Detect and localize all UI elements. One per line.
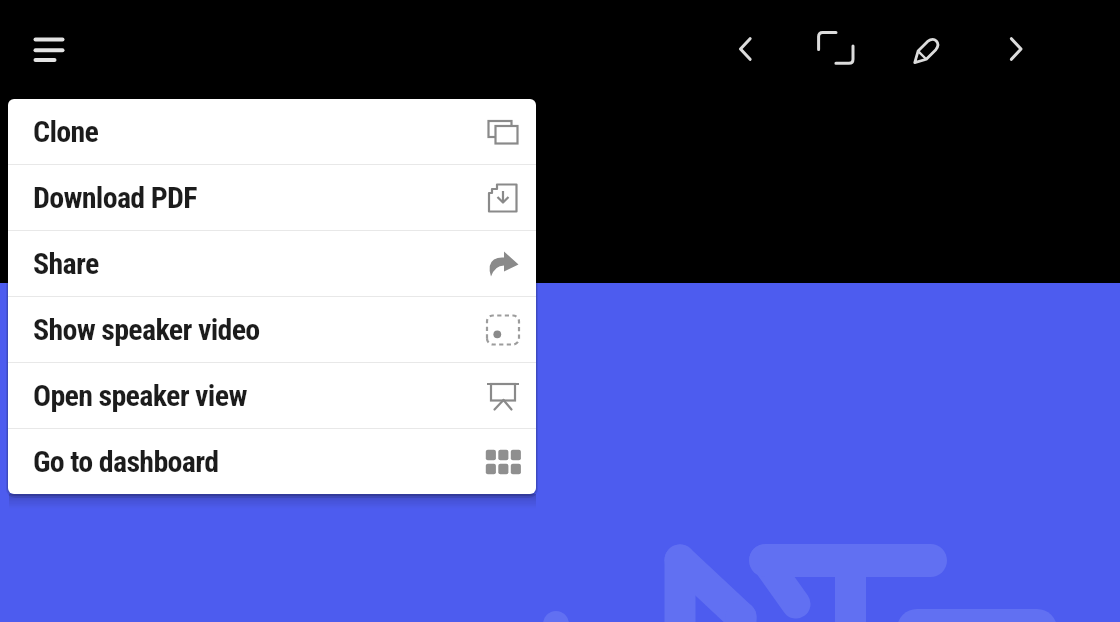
button[interactable] (906, 25, 952, 71)
button[interactable] (25, 26, 73, 74)
button[interactable]: Go to dashboard (8, 429, 536, 494)
button[interactable] (993, 25, 1039, 71)
button[interactable] (719, 25, 765, 71)
button[interactable]: Open speaker view (8, 363, 536, 428)
staticText: Open speaker view (33, 378, 247, 413)
button[interactable]: Share (8, 231, 536, 296)
button[interactable]: Show speaker video (8, 297, 536, 362)
button[interactable]: Clone (8, 99, 536, 164)
button[interactable]: Download PDF (8, 165, 536, 230)
button[interactable] (813, 25, 859, 71)
staticText: Share (33, 246, 99, 281)
staticText: Clone (33, 114, 99, 149)
staticText: Go to dashboard (33, 444, 219, 479)
staticText: Download PDF (33, 180, 197, 215)
staticText: Show speaker video (33, 312, 260, 347)
